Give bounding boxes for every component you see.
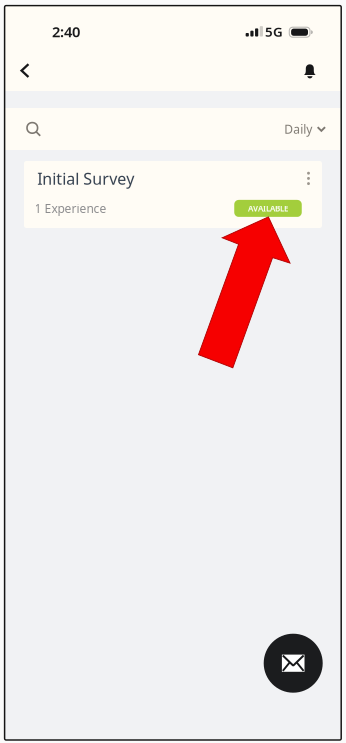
button[interactable]: Messages bbox=[264, 634, 323, 693]
button[interactable]: Initial Survey bbox=[24, 161, 322, 228]
button[interactable]: Search bbox=[15, 111, 51, 147]
button[interactable]: Back bbox=[5, 51, 45, 91]
button[interactable]: Daily bbox=[280, 113, 330, 145]
staticText: Initial Survey bbox=[37, 168, 134, 189]
button[interactable]: Notifications bbox=[290, 51, 330, 91]
staticText: 5G bbox=[265, 23, 283, 40]
staticText: 1 Experience bbox=[34, 200, 106, 216]
staticText: Daily bbox=[284, 121, 312, 137]
staticText: 2:40 bbox=[52, 22, 80, 41]
staticText: AVAILABLE bbox=[248, 203, 288, 214]
